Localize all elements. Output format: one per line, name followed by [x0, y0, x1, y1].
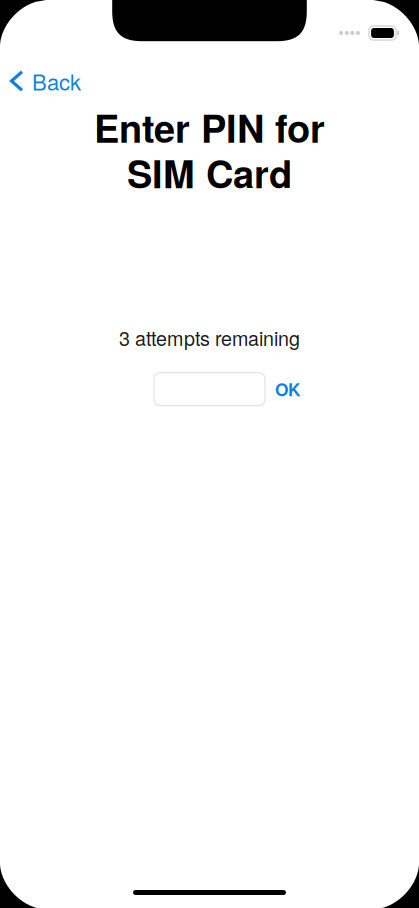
staticText: 3 attempts remaining: [119, 323, 300, 352]
staticText: Enter PIN for: [94, 100, 325, 154]
button[interactable]: OK: [275, 377, 301, 401]
button[interactable]: PIN: [154, 373, 265, 406]
staticText: SIM Card: [127, 145, 292, 200]
staticText: OK: [275, 377, 301, 401]
staticText: Back: [32, 65, 81, 97]
button[interactable]: Back: [0, 64, 419, 98]
